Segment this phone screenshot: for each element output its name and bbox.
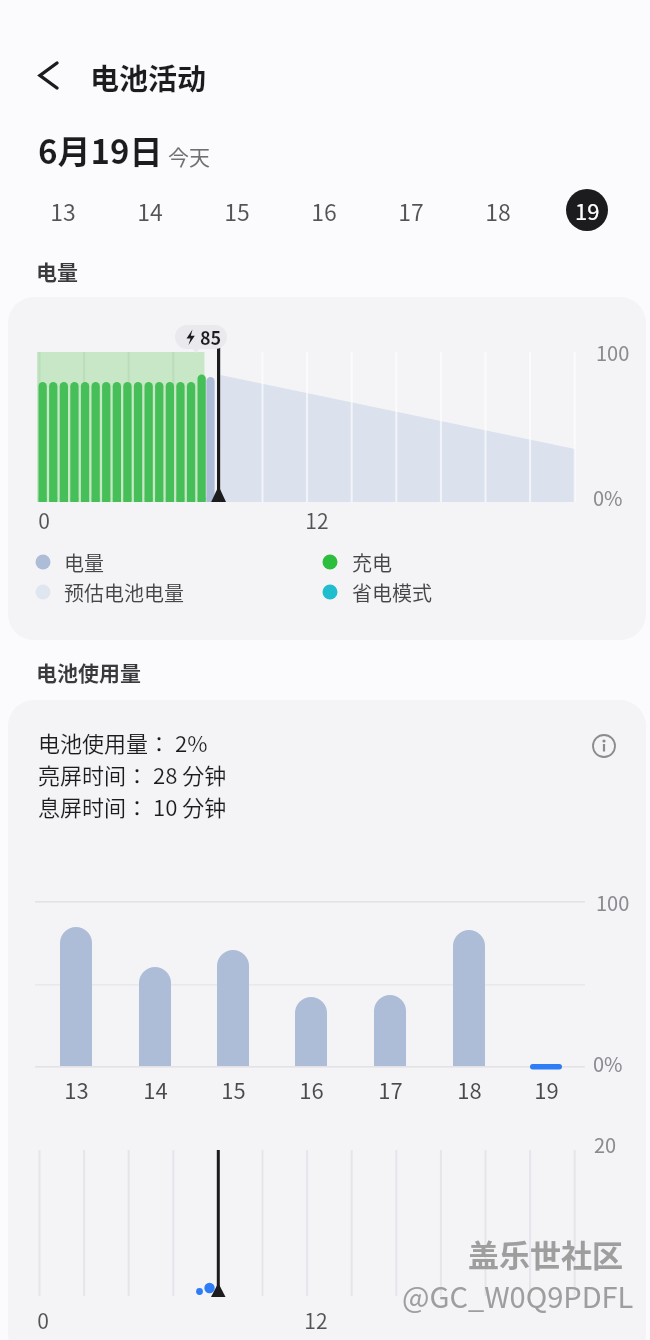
staticText: 18: [485, 194, 511, 227]
staticText: 6月19日: [38, 126, 163, 174]
button[interactable]: 15: [197, 180, 277, 240]
button[interactable]: [28, 56, 68, 96]
button[interactable]: 17: [371, 180, 451, 240]
staticText: 20: [594, 1130, 617, 1159]
button[interactable]: 18: [458, 180, 538, 240]
staticText: 19: [534, 1073, 559, 1105]
staticText: 85: [200, 324, 222, 350]
staticText: 17: [398, 194, 424, 227]
staticText: 12: [305, 505, 329, 535]
staticText: 电池活动: [90, 56, 207, 98]
staticText: 充电: [352, 548, 392, 577]
button[interactable]: [590, 732, 618, 760]
staticText: 17: [378, 1073, 403, 1105]
staticText: 预估电池电量: [64, 578, 184, 607]
staticText: 14: [143, 1073, 168, 1105]
staticText: 100: [596, 338, 630, 367]
staticText: 15: [221, 1073, 246, 1105]
staticText: 0: [37, 1305, 49, 1335]
staticText: 0%: [593, 483, 623, 512]
staticText: 0: [38, 505, 50, 535]
staticText: 息屏时间： 10 分钟: [38, 790, 227, 822]
staticText: 电池使用量: [36, 657, 141, 687]
button[interactable]: 13: [23, 180, 103, 240]
staticText: 0%: [593, 1049, 623, 1078]
staticText: 盖乐世社区: [468, 1231, 623, 1276]
staticText: 16: [311, 194, 337, 227]
staticText: 电池使用量： 2%: [38, 726, 208, 758]
staticText: 省电模式: [352, 578, 432, 607]
staticText: 12: [304, 1305, 328, 1335]
staticText: 100: [596, 888, 630, 917]
staticText: 电量: [64, 548, 104, 577]
staticText: 13: [50, 194, 76, 227]
button[interactable]: 14: [110, 180, 190, 240]
staticText: 19: [575, 194, 600, 226]
staticText: @GC_W0Q9PDFL: [402, 1274, 634, 1316]
staticText: 亮屏时间： 28 分钟: [38, 758, 227, 790]
button[interactable]: 16: [284, 180, 364, 240]
staticText: 16: [299, 1073, 324, 1105]
staticText: 18: [457, 1073, 482, 1105]
staticText: 电量: [36, 256, 78, 286]
staticText: 今天: [168, 141, 210, 171]
staticText: 15: [224, 194, 250, 227]
staticText: 13: [64, 1073, 89, 1105]
staticText: 14: [137, 194, 163, 227]
button[interactable]: 19: [566, 189, 608, 231]
